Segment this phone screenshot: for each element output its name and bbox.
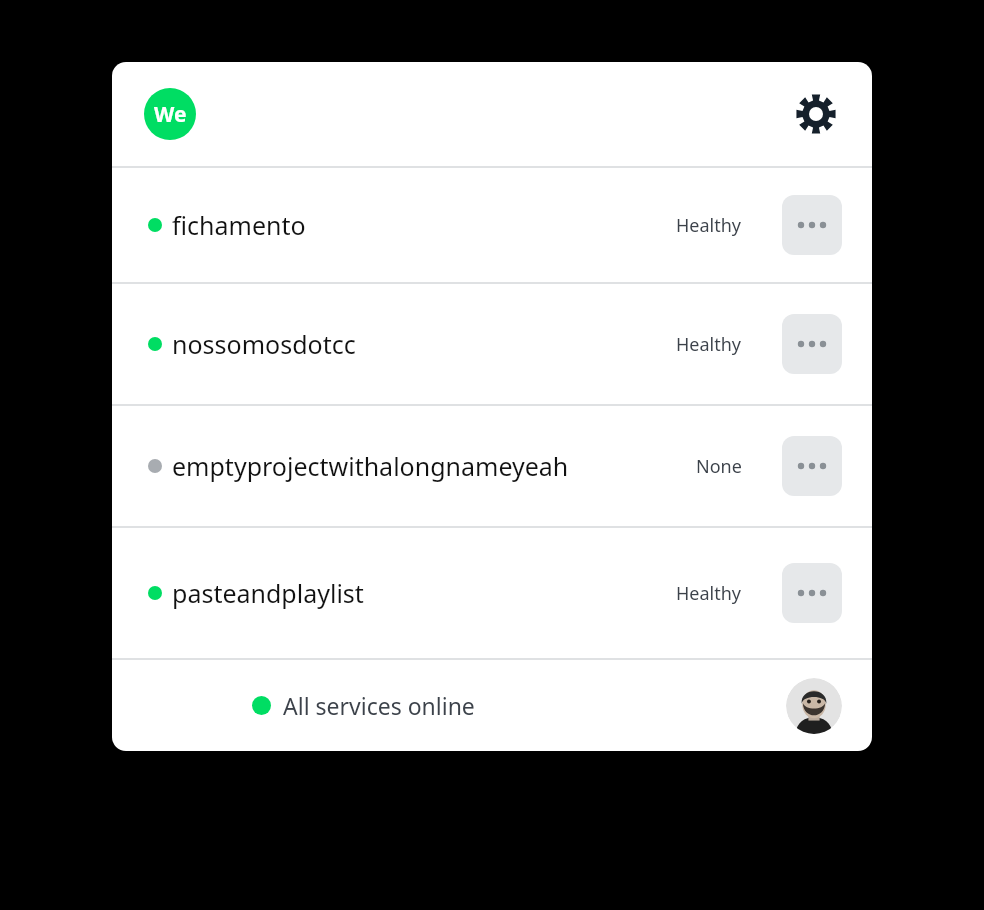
staticText: None (696, 454, 742, 479)
staticText: We (154, 100, 187, 129)
staticText: pasteandplaylist (172, 576, 364, 610)
button[interactable]: More options (782, 563, 842, 623)
staticText: Healthy (676, 332, 742, 357)
button[interactable]: Settings (790, 88, 842, 140)
button[interactable]: More options (782, 436, 842, 496)
staticText: fichamento (172, 208, 306, 242)
button[interactable]: More options (782, 195, 842, 255)
staticText: emptyprojectwithalongnameyeah (172, 449, 569, 483)
button[interactable]: nossomosdotcc (112, 284, 872, 404)
button[interactable]: Account (786, 678, 842, 734)
staticText: All services online (283, 690, 475, 721)
staticText: Healthy (676, 581, 742, 606)
button[interactable]: We (144, 88, 196, 140)
staticText: Healthy (676, 213, 742, 238)
button[interactable]: emptyprojectwithalongnameyeah (112, 406, 872, 526)
staticText: nossomosdotcc (172, 327, 356, 361)
button[interactable]: fichamento (112, 168, 872, 282)
button[interactable]: pasteandplaylist (112, 528, 872, 658)
button[interactable]: All services online (112, 660, 872, 751)
button[interactable]: More options (782, 314, 842, 374)
